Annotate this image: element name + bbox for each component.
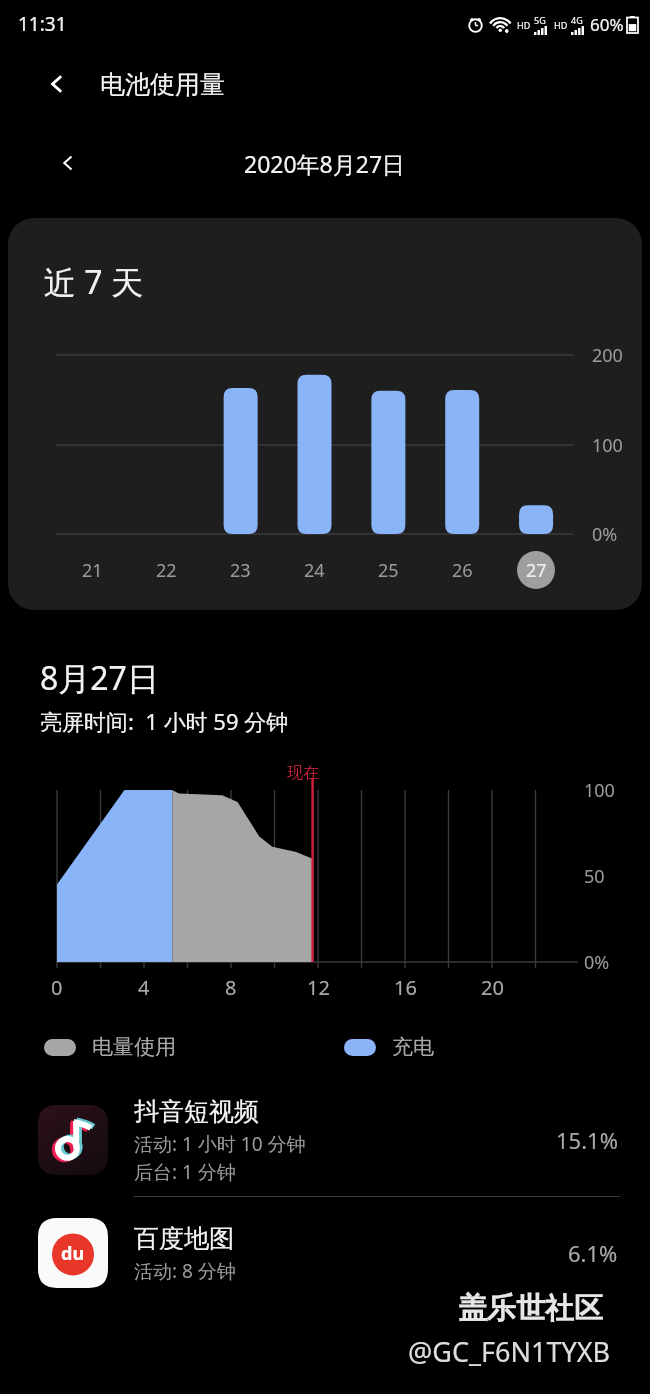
staticText: 活动: 8 分钟	[134, 1258, 236, 1284]
staticText: 后台: 1 分钟	[134, 1159, 236, 1185]
staticText: HD	[554, 19, 568, 31]
staticText: 活动: 1 小时 10 分钟	[134, 1131, 306, 1157]
staticText: 22	[156, 558, 177, 583]
staticText: 12	[307, 974, 330, 1001]
staticText: 200	[592, 343, 623, 368]
staticText: 百度地图	[134, 1223, 234, 1254]
button[interactable]: 前一天	[46, 141, 90, 185]
staticText: 50	[584, 864, 605, 889]
staticText: 4	[138, 974, 150, 1001]
staticText: 5G	[534, 14, 546, 26]
button[interactable]: 近 7 天	[8, 218, 642, 610]
staticText: 20	[481, 974, 504, 1001]
staticText: 26	[452, 558, 473, 583]
staticText: 电池使用量	[100, 69, 225, 100]
staticText: @GC_F6N1TYXB	[408, 1333, 611, 1370]
staticText: 100	[584, 778, 615, 803]
staticText: 60%	[590, 13, 624, 36]
staticText: 24	[304, 558, 325, 583]
staticText: 27	[526, 558, 547, 583]
staticText: 电量使用	[92, 1034, 176, 1060]
staticText: 11:31	[18, 11, 67, 37]
staticText: 现在	[287, 763, 319, 783]
staticText: 21	[82, 558, 103, 583]
staticText: 抖音短视频	[134, 1096, 259, 1127]
staticText: 23	[230, 558, 251, 583]
staticText: 6.1%	[568, 1238, 618, 1268]
staticText: 0%	[584, 950, 610, 975]
staticText: 0%	[592, 522, 618, 547]
staticText: 16	[394, 974, 417, 1001]
staticText: 充电	[392, 1034, 434, 1060]
button[interactable]: 抖音短视频	[0, 1084, 650, 1196]
staticText: 0	[51, 974, 63, 1001]
staticText: 8	[225, 974, 237, 1001]
staticText: 8月27日	[40, 656, 159, 700]
staticText: 15.1%	[556, 1125, 618, 1155]
staticText: du	[61, 1241, 85, 1266]
staticText: 2020年8月27日	[244, 148, 406, 179]
staticText: 亮屏时间: 1 小时 59 分钟	[40, 706, 289, 736]
staticText: HD	[517, 19, 531, 31]
staticText: 近 7 天	[44, 260, 143, 304]
staticText: 4G	[571, 14, 583, 26]
staticText: 100	[592, 433, 623, 458]
button[interactable]: 返回	[34, 61, 80, 107]
staticText: 25	[378, 558, 399, 583]
button[interactable]: du	[0, 1197, 650, 1309]
staticText: 盖乐世社区	[458, 1290, 603, 1327]
